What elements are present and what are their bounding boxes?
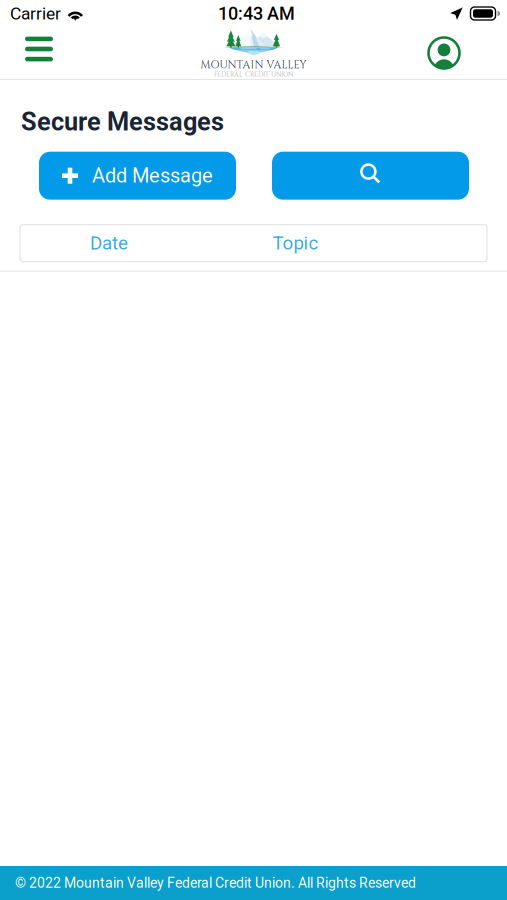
button[interactable]: Menu	[12, 29, 66, 77]
staticText: Topic	[272, 232, 318, 254]
button[interactable]: Topic	[198, 225, 393, 262]
staticText: Add Message	[92, 164, 213, 187]
staticText: © 2022 Mountain Valley Federal Credit Un…	[15, 875, 416, 891]
staticText: MOUNTAIN VALLEY	[200, 58, 306, 72]
staticText: 10:43 AM	[218, 3, 295, 24]
staticText: Date	[90, 232, 128, 254]
staticText: Carrier	[10, 3, 61, 24]
button[interactable]: Add Message	[39, 152, 236, 200]
button[interactable]: Account	[417, 29, 471, 77]
button[interactable]: Search	[272, 152, 469, 200]
staticText: FEDERAL CREDIT UNION	[214, 70, 293, 79]
staticText: Secure Messages	[21, 107, 224, 137]
button[interactable]: Date	[20, 225, 198, 262]
